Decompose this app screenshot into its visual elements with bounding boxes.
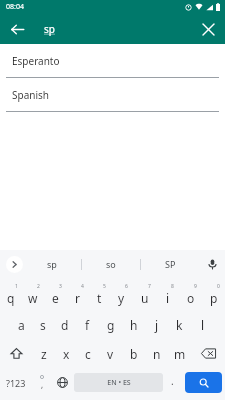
staticText: Spanish: [12, 88, 49, 102]
button[interactable]: f: [76, 310, 99, 339]
button[interactable]: ?123: [0, 368, 32, 397]
staticText: p: [210, 290, 218, 306]
staticText: x: [63, 346, 70, 362]
button[interactable]: Spanish: [0, 78, 225, 112]
button[interactable]: a: [10, 310, 32, 339]
button[interactable]: 8: [156, 281, 179, 310]
button[interactable]: 5: [88, 281, 110, 310]
staticText: so: [106, 258, 116, 270]
staticText: k: [176, 317, 183, 333]
button[interactable]: j: [145, 310, 168, 339]
staticText: g: [107, 317, 115, 333]
button[interactable]: 2: [22, 281, 44, 310]
staticText: v: [107, 346, 114, 362]
button[interactable]: x: [55, 339, 77, 368]
button[interactable]: Backspace: [191, 339, 225, 368]
staticText: sp: [44, 22, 55, 36]
staticText: w: [28, 290, 38, 306]
staticText: o: [187, 290, 195, 306]
staticText: 6: [125, 283, 128, 290]
staticText: 8: [171, 283, 174, 290]
staticText: ,: [41, 379, 44, 390]
staticText: h: [130, 317, 138, 333]
button[interactable]: SP: [141, 250, 199, 278]
staticText: i: [166, 290, 170, 306]
staticText: y: [118, 290, 125, 306]
button[interactable]: l: [191, 310, 214, 339]
button[interactable]: k: [168, 310, 191, 339]
button[interactable]: 7: [133, 281, 156, 310]
staticText: l: [201, 317, 205, 333]
staticText: 7: [148, 283, 151, 290]
staticText: 1: [15, 283, 18, 290]
button[interactable]: s: [32, 310, 54, 339]
staticText: s: [40, 317, 46, 333]
staticText: j: [155, 317, 159, 333]
button[interactable]: z: [33, 339, 55, 368]
staticText: r: [75, 290, 80, 306]
button[interactable]: Voice input: [199, 250, 225, 278]
button[interactable]: Navigate up: [4, 16, 30, 42]
staticText: e: [52, 290, 59, 306]
staticText: EN • ES: [107, 378, 131, 388]
staticText: m: [174, 346, 186, 362]
button[interactable]: d: [54, 310, 76, 339]
button[interactable]: m: [168, 339, 191, 368]
button[interactable]: 6: [110, 281, 133, 310]
button[interactable]: v: [99, 339, 122, 368]
staticText: q: [7, 290, 15, 306]
staticText: 08:04: [6, 2, 24, 12]
button[interactable]: sp: [23, 250, 81, 278]
button[interactable]: Clear query: [195, 16, 221, 42]
button[interactable]: 1: [0, 281, 22, 310]
button[interactable]: Search: [185, 372, 222, 393]
staticText: .: [171, 374, 174, 388]
button[interactable]: 3: [44, 281, 66, 310]
staticText: 0: [217, 283, 220, 290]
staticText: c: [85, 346, 91, 362]
button[interactable]: h: [122, 310, 145, 339]
button[interactable]: g: [99, 310, 122, 339]
button[interactable]: Emoji: [32, 368, 51, 397]
button[interactable]: Esperanto: [0, 44, 225, 78]
staticText: d: [61, 317, 69, 333]
staticText: 9: [194, 283, 197, 290]
button[interactable]: so: [82, 250, 140, 278]
staticText: 2: [37, 283, 40, 290]
staticText: u: [141, 290, 149, 306]
button[interactable]: c: [77, 339, 99, 368]
button[interactable]: n: [145, 339, 168, 368]
button[interactable]: More suggestions: [6, 256, 23, 273]
staticText: z: [41, 346, 47, 362]
staticText: 4: [81, 283, 84, 290]
staticText: 5: [103, 283, 106, 290]
staticText: f: [85, 317, 90, 333]
staticText: a: [18, 317, 25, 333]
staticText: Esperanto: [12, 54, 60, 68]
staticText: n: [153, 346, 161, 362]
button[interactable]: b: [122, 339, 145, 368]
staticText: b: [130, 346, 138, 362]
button[interactable]: 0: [202, 281, 225, 310]
staticText: SP: [165, 258, 176, 270]
button[interactable]: 4: [66, 281, 88, 310]
staticText: ?123: [6, 377, 26, 389]
staticText: t: [97, 290, 102, 306]
button[interactable]: Shift: [0, 339, 33, 368]
staticText: 3: [59, 283, 62, 290]
staticText: sp: [47, 258, 57, 270]
button[interactable]: Space: [74, 373, 163, 392]
button[interactable]: .: [163, 368, 182, 397]
button[interactable]: 9: [179, 281, 202, 310]
button[interactable]: Change keyboard language: [51, 368, 74, 397]
